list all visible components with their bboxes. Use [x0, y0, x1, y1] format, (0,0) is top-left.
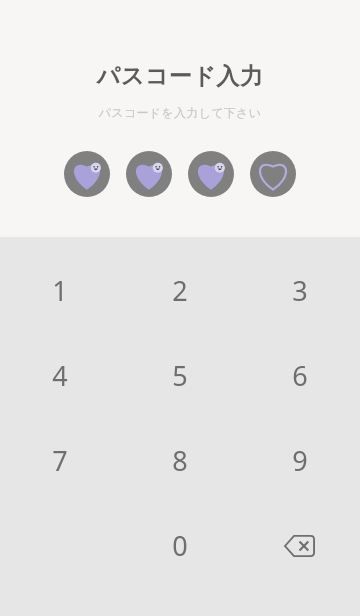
staticText: 7: [52, 442, 68, 479]
button[interactable]: 8: [120, 418, 240, 503]
button[interactable]: 5: [120, 333, 240, 418]
staticText: 2: [172, 272, 188, 309]
staticText: パスコードを入力して下さい: [0, 105, 360, 120]
staticText: 4: [52, 357, 68, 394]
staticText: 6: [292, 357, 308, 394]
button[interactable]: 3: [240, 247, 360, 333]
staticText: パスコード入力: [0, 62, 360, 91]
button[interactable]: 6: [240, 333, 360, 418]
button[interactable]: Backspace: [240, 503, 360, 588]
button[interactable]: 1: [0, 247, 120, 333]
staticText: 0: [172, 527, 188, 564]
button[interactable]: 9: [240, 418, 360, 503]
staticText: 8: [172, 442, 188, 479]
staticText: 9: [292, 442, 308, 479]
button[interactable]: 2: [120, 247, 240, 333]
staticText: 5: [172, 357, 188, 394]
staticText: 3: [292, 272, 308, 309]
staticText: 1: [52, 272, 68, 309]
button[interactable]: 7: [0, 418, 120, 503]
button[interactable]: 0: [120, 503, 240, 588]
button[interactable]: 4: [0, 333, 120, 418]
